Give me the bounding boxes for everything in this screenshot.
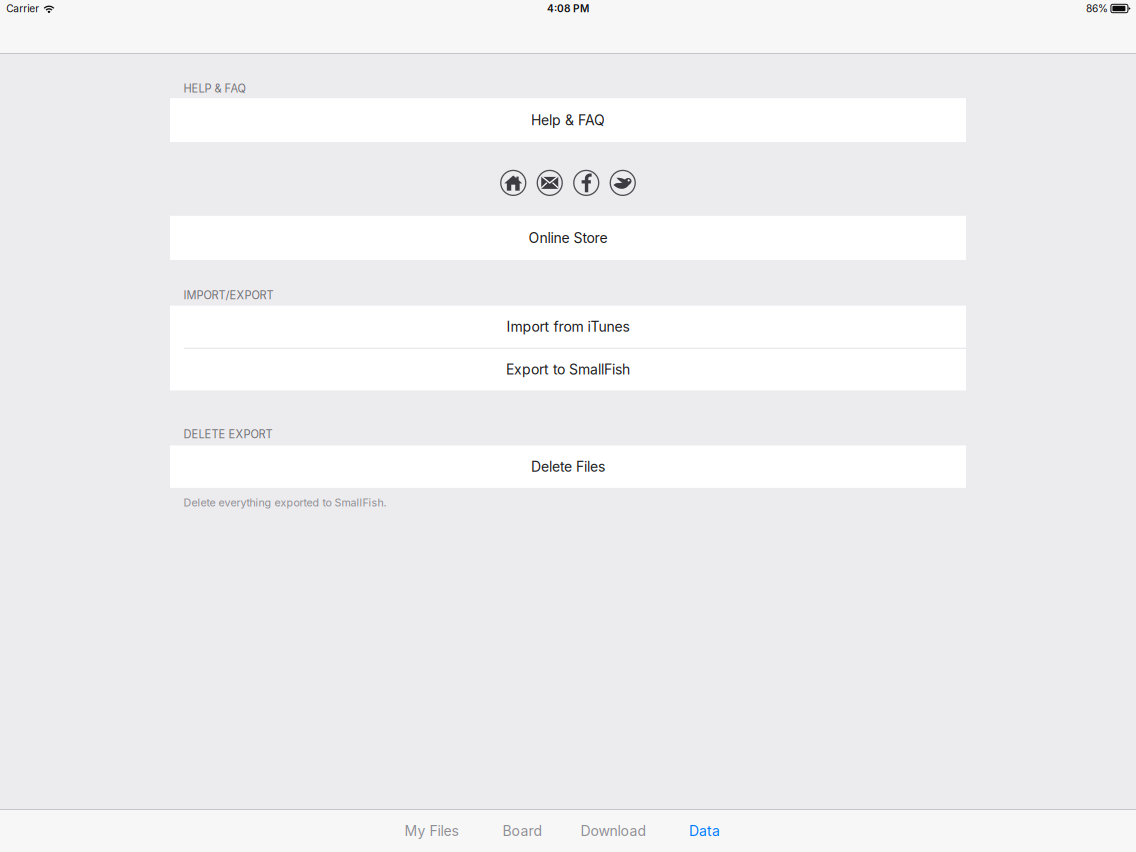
staticText: Carrier bbox=[6, 2, 39, 15]
staticText: Export to SmallFish bbox=[506, 361, 630, 378]
staticText: Import from iTunes bbox=[506, 318, 629, 335]
button[interactable]: My Files bbox=[386, 810, 477, 852]
staticText: Online Store bbox=[528, 229, 607, 246]
staticText: HELP & FAQ bbox=[183, 82, 245, 95]
staticText: Delete Files bbox=[531, 458, 605, 475]
staticText: Help & FAQ bbox=[531, 112, 605, 129]
button[interactable]: Twitter bbox=[610, 170, 635, 195]
staticText: Data bbox=[689, 822, 720, 839]
staticText: Download bbox=[580, 822, 646, 839]
staticText: Board bbox=[502, 822, 542, 839]
staticText: DELETE EXPORT bbox=[183, 427, 272, 441]
staticText: My Files bbox=[404, 822, 458, 839]
button[interactable]: Data bbox=[659, 810, 750, 852]
staticText: 86% bbox=[1086, 2, 1108, 15]
button[interactable]: Email bbox=[537, 170, 562, 195]
button[interactable]: Help & FAQ bbox=[170, 98, 966, 142]
button[interactable]: Delete Files bbox=[170, 446, 966, 488]
button[interactable]: Facebook bbox=[574, 170, 599, 195]
button[interactable]: Board bbox=[477, 810, 568, 852]
button[interactable]: Import from iTunes bbox=[170, 306, 966, 348]
button[interactable]: Export to SmallFish bbox=[170, 349, 966, 390]
staticText: Delete everything exported to SmallFish. bbox=[183, 496, 386, 509]
staticText: IMPORT/EXPORT bbox=[183, 289, 273, 302]
button[interactable]: Download bbox=[568, 810, 659, 852]
button[interactable]: Website bbox=[501, 170, 526, 195]
staticText: 4:08 PM bbox=[547, 2, 589, 15]
button[interactable]: Online Store bbox=[170, 216, 966, 260]
